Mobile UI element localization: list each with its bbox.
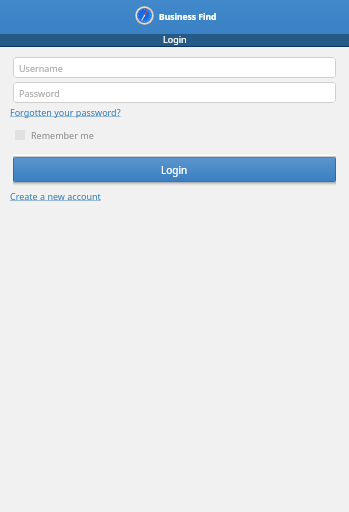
button[interactable]: Forgotten your password? bbox=[10, 106, 121, 118]
staticText: Create a new account bbox=[10, 190, 101, 202]
staticText: Remember me bbox=[31, 129, 94, 141]
button[interactable]: Login bbox=[13, 154, 336, 186]
staticText: Business Find bbox=[159, 11, 217, 23]
button[interactable]: Login bbox=[0, 34, 349, 46]
button[interactable]: Remember me bbox=[15, 129, 94, 141]
button[interactable]: Create a new account bbox=[10, 190, 101, 202]
staticText: Login bbox=[163, 33, 187, 45]
button[interactable]: Password bbox=[13, 82, 336, 103]
staticText: Forgotten your password? bbox=[10, 106, 121, 118]
staticText: Login bbox=[161, 163, 188, 177]
staticText: Password bbox=[19, 87, 60, 99]
button[interactable]: Username bbox=[13, 57, 336, 78]
staticText: Username bbox=[19, 62, 63, 74]
other: Business Find logo bbox=[135, 6, 154, 25]
